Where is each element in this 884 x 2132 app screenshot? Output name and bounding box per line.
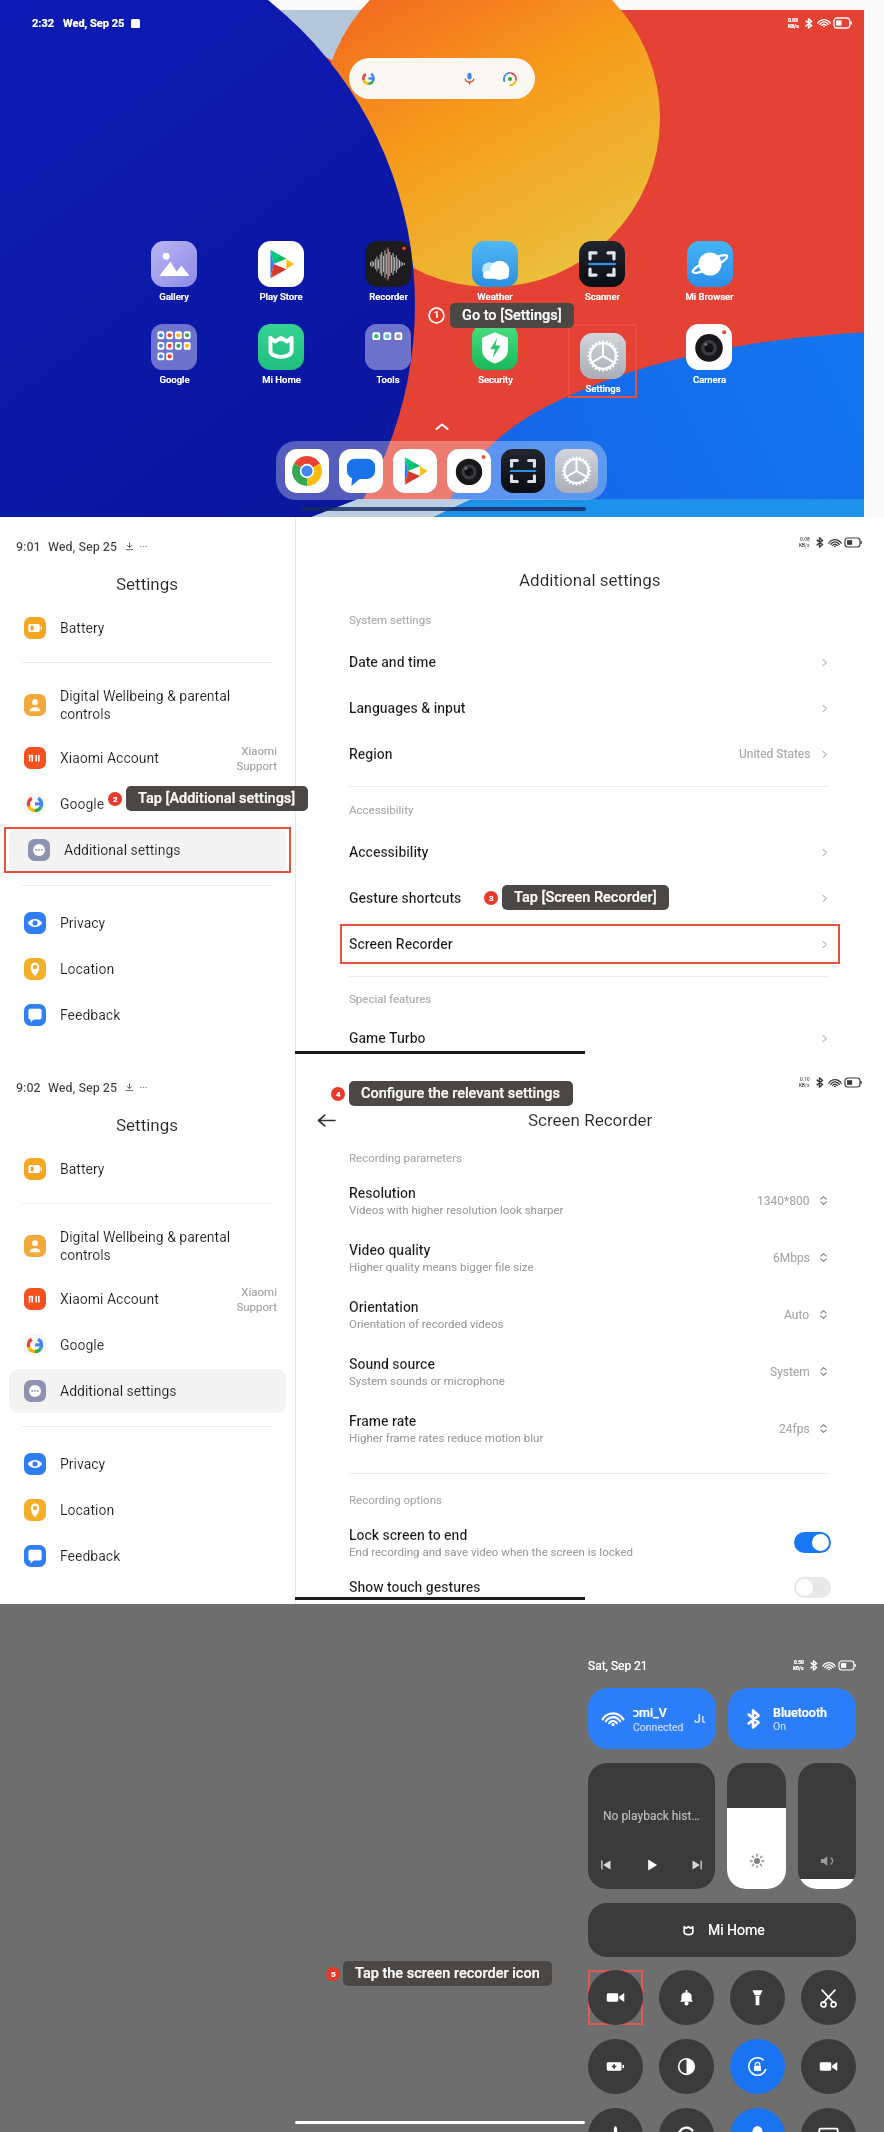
- button[interactable]: Google: [151, 324, 197, 385]
- button[interactable]: Tools: [365, 324, 411, 385]
- staticText: Battery: [60, 1161, 232, 1177]
- button[interactable]: Location: [0, 1487, 295, 1533]
- staticText: KB/s: [793, 1666, 804, 1672]
- button[interactable]: Location: [730, 2108, 785, 2132]
- button[interactable]: Sound source: [296, 1343, 884, 1400]
- staticText: Settings: [585, 383, 621, 394]
- button[interactable]: Gallery: [151, 241, 197, 302]
- staticText: Feedback: [60, 1007, 232, 1023]
- staticText: Gesture shortcuts: [349, 890, 818, 906]
- button[interactable]: Scanner: [501, 449, 545, 493]
- button[interactable]: Messages: [339, 449, 383, 493]
- staticText: Sound source: [349, 1356, 435, 1372]
- button[interactable]: Security: [472, 324, 518, 385]
- button[interactable]: Digital Wellbeing & parental controls: [0, 1216, 295, 1276]
- button[interactable]: Google: [0, 1322, 295, 1368]
- button[interactable]: Resolution: [296, 1172, 884, 1229]
- button[interactable]: Camera: [447, 449, 491, 493]
- button[interactable]: [727, 1763, 786, 1889]
- button[interactable]: [349, 58, 535, 99]
- button[interactable]: Additional settings: [0, 1368, 295, 1414]
- staticText: Battery: [60, 620, 232, 636]
- button[interactable]: Additional settings: [4, 827, 291, 873]
- staticText: Mi Browser: [685, 291, 734, 302]
- staticText: Google: [60, 796, 232, 812]
- button[interactable]: ɔmi_V: [588, 1688, 716, 1749]
- button[interactable]: Mi Browser: [685, 241, 734, 302]
- staticText: Configure the relevant settings: [361, 1085, 561, 1102]
- button[interactable]: Screenshot: [801, 1970, 856, 2025]
- staticText: KB/s: [799, 543, 810, 549]
- staticText: 5: [331, 1970, 336, 1979]
- button[interactable]: Chrome: [285, 449, 329, 493]
- button[interactable]: Video quality: [296, 1229, 884, 1286]
- button[interactable]: Play Store: [393, 449, 437, 493]
- button[interactable]: Show touch gestures: [296, 1570, 884, 1604]
- button[interactable]: Sync: [659, 2108, 714, 2132]
- button[interactable]: Digital Wellbeing & parental controls: [0, 675, 295, 735]
- staticText: 2: [113, 795, 118, 804]
- button[interactable]: Airplane mode: [588, 2108, 643, 2132]
- button[interactable]: Settings: [568, 333, 637, 394]
- staticText: Xiaomi Account: [60, 1291, 232, 1307]
- staticText: Wed, Sep 25: [48, 539, 118, 554]
- button[interactable]: Feedback: [0, 1533, 295, 1579]
- button[interactable]: Scanner: [579, 241, 625, 302]
- button[interactable]: Cast: [801, 2108, 856, 2132]
- button[interactable]: [798, 1763, 856, 1889]
- button[interactable]: Screen Recorder: [340, 924, 840, 964]
- button[interactable]: No playback hist…: [588, 1763, 715, 1889]
- staticText: Settings: [116, 1115, 179, 1135]
- button[interactable]: Weather: [472, 241, 518, 302]
- button[interactable]: Lock screen to end: [296, 1515, 884, 1570]
- staticText: Privacy: [60, 1456, 232, 1472]
- staticText: Security: [478, 374, 513, 385]
- button[interactable]: Region: [296, 731, 884, 777]
- button[interactable]: Google: [0, 781, 295, 827]
- button[interactable]: Privacy: [0, 1441, 295, 1487]
- button[interactable]: Dark mode: [659, 2039, 714, 2094]
- button[interactable]: Frame rate: [296, 1400, 884, 1457]
- staticText: Xiaomi Support: [232, 1285, 277, 1314]
- button[interactable]: Xiaomi Account: [0, 1276, 295, 1322]
- button[interactable]: Notifications: [659, 1970, 714, 2025]
- button[interactable]: Battery saver: [588, 2039, 643, 2094]
- staticText: Higher quality means bigger file size: [349, 1260, 534, 1273]
- staticText: Recorder: [369, 291, 408, 302]
- button[interactable]: Location: [0, 946, 295, 992]
- button[interactable]: Xiaomi Account: [0, 735, 295, 781]
- staticText: Privacy: [60, 915, 232, 931]
- button[interactable]: Battery: [0, 605, 295, 651]
- button[interactable]: Recorder: [365, 241, 411, 302]
- staticText: Mi Home: [708, 1922, 765, 1938]
- button[interactable]: Back: [316, 1110, 337, 1131]
- staticText: 3: [489, 894, 494, 903]
- button[interactable]: Orientation: [296, 1286, 884, 1343]
- button[interactable]: Screen recorder: [588, 1970, 643, 2025]
- button[interactable]: Privacy: [0, 900, 295, 946]
- button[interactable]: Rotation lock: [730, 2039, 785, 2094]
- button[interactable]: Video: [801, 2039, 856, 2094]
- staticText: Tap [Screen Recorder]: [514, 889, 657, 906]
- button[interactable]: Bluetooth: [728, 1688, 856, 1749]
- staticText: System settings: [349, 613, 432, 626]
- staticText: Additional settings: [64, 842, 236, 858]
- button[interactable]: Mi Home: [588, 1903, 856, 1957]
- button[interactable]: Languages & input: [296, 685, 884, 731]
- staticText: 1: [434, 310, 440, 321]
- button[interactable]: Game Turbo: [296, 1018, 884, 1058]
- button[interactable]: Accessibility: [296, 829, 884, 875]
- button[interactable]: Gesture shortcuts: [296, 875, 884, 921]
- button[interactable]: Camera: [686, 324, 732, 385]
- button[interactable]: Flashlight: [730, 1970, 785, 2025]
- button[interactable]: Feedback: [0, 992, 295, 1038]
- button[interactable]: Play Store: [258, 241, 304, 302]
- staticText: Scanner: [585, 291, 620, 302]
- staticText: Region: [349, 746, 739, 762]
- staticText: Recording options: [349, 1493, 442, 1506]
- button[interactable]: Battery: [0, 1146, 295, 1192]
- button[interactable]: Mi Home: [258, 324, 304, 385]
- button[interactable]: Settings: [555, 449, 598, 493]
- staticText: Game Turbo: [349, 1030, 818, 1046]
- button[interactable]: Date and time: [296, 639, 884, 685]
